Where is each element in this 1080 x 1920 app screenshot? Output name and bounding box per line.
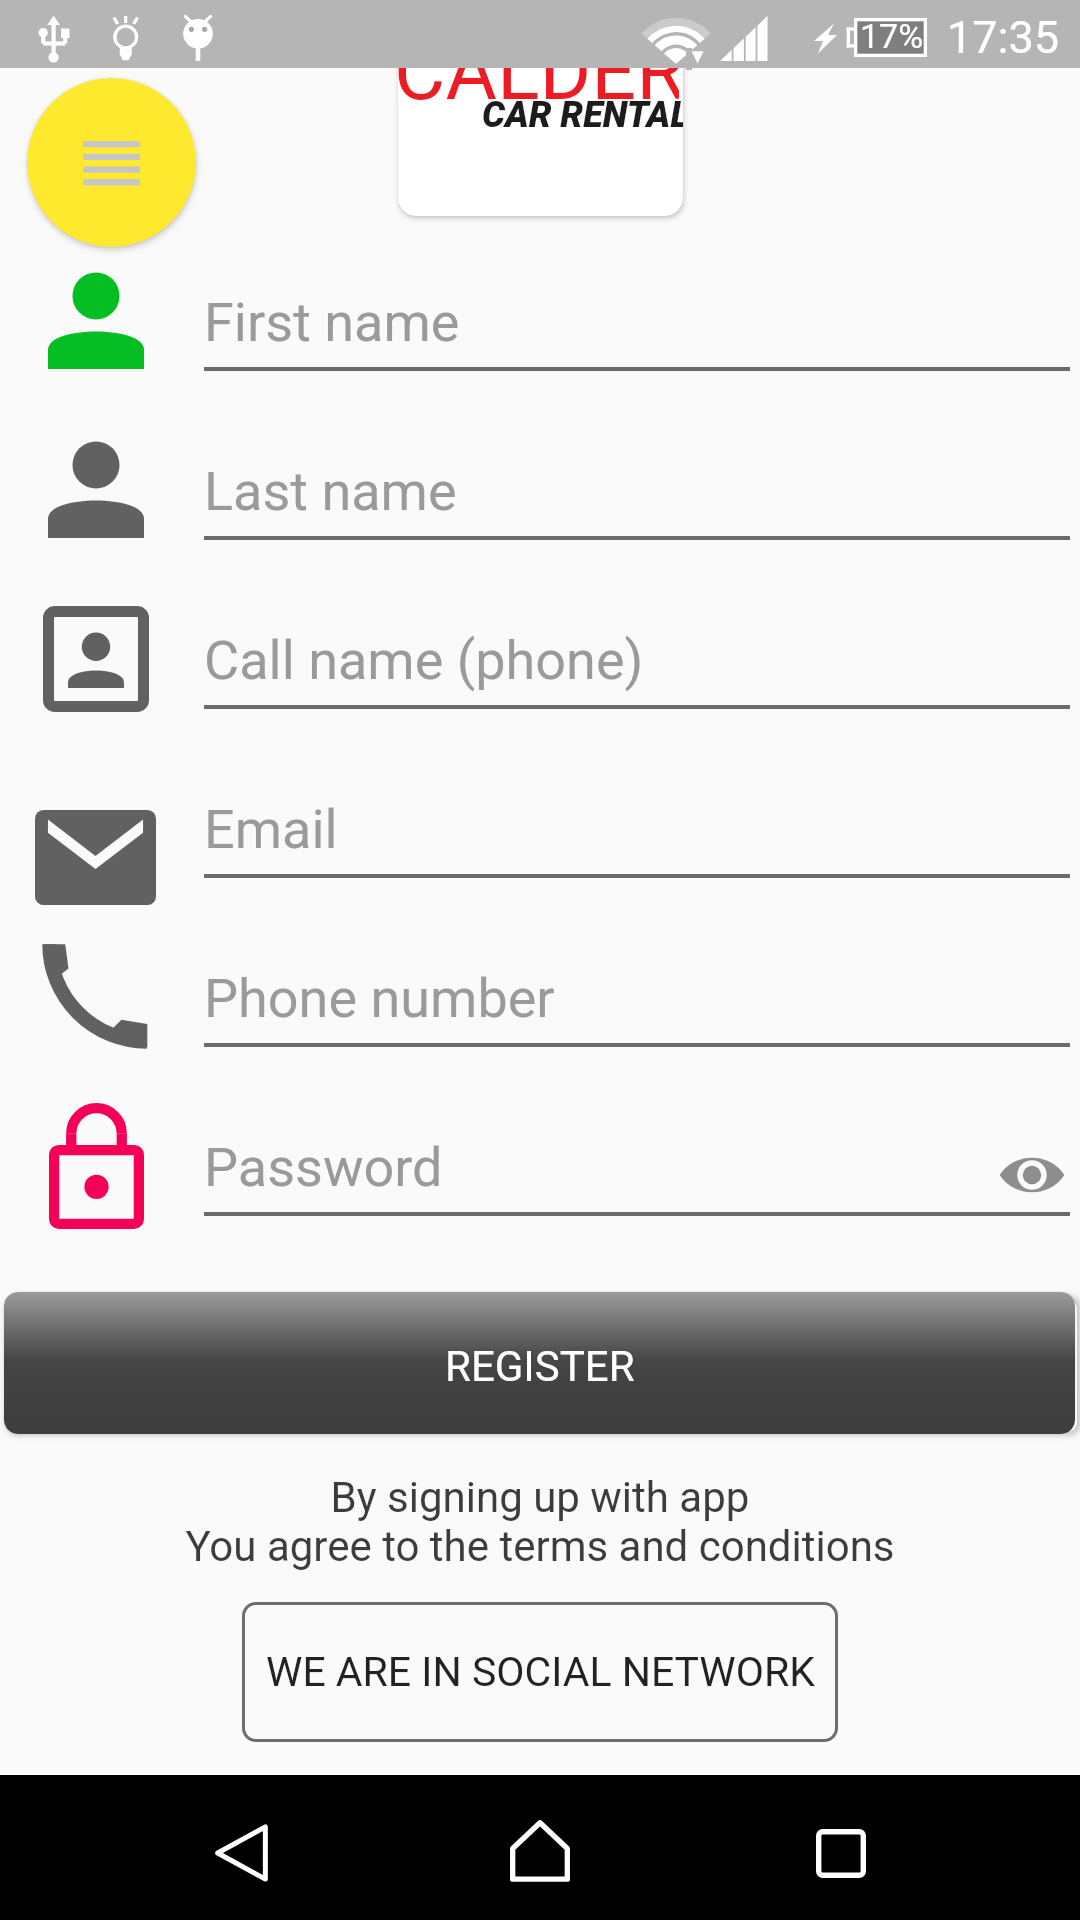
staticText: Last name [204, 460, 457, 523]
button[interactable]: Home [495, 1806, 585, 1896]
button[interactable]: Call name (phone) [0, 598, 1080, 767]
staticText: 17:35 [947, 11, 1060, 64]
button[interactable]: WE ARE IN SOCIAL NETWORK [242, 1602, 838, 1742]
button[interactable]: Back [198, 1808, 284, 1898]
staticText: Phone number [204, 967, 555, 1030]
staticText: Password [204, 1136, 443, 1199]
staticText: 17% [860, 16, 924, 56]
button[interactable]: REGISTER [4, 1292, 1075, 1434]
staticText: WE ARE IN SOCIAL NETWORK [266, 1648, 815, 1696]
staticText: REGISTER [445, 1342, 635, 1391]
staticText: You agree to the terms and conditions [0, 1522, 1080, 1571]
staticText: CALDER [398, 26, 679, 119]
button[interactable]: Last name [0, 429, 1080, 598]
staticText: CAR RENTAL [482, 94, 683, 136]
button[interactable]: Recent apps [798, 1810, 884, 1896]
button[interactable]: Menu [27, 78, 196, 247]
button[interactable]: First name [0, 260, 1080, 429]
staticText: First name [204, 291, 460, 354]
staticText: Email [204, 798, 338, 861]
staticText: Call name (phone) [204, 629, 644, 692]
button[interactable]: Email [0, 767, 1080, 936]
button[interactable]: Password [0, 1105, 1080, 1274]
staticText: By signing up with app [0, 1473, 1080, 1522]
button[interactable]: Phone number [0, 936, 1080, 1105]
button[interactable]: CALDER [398, 9, 683, 216]
